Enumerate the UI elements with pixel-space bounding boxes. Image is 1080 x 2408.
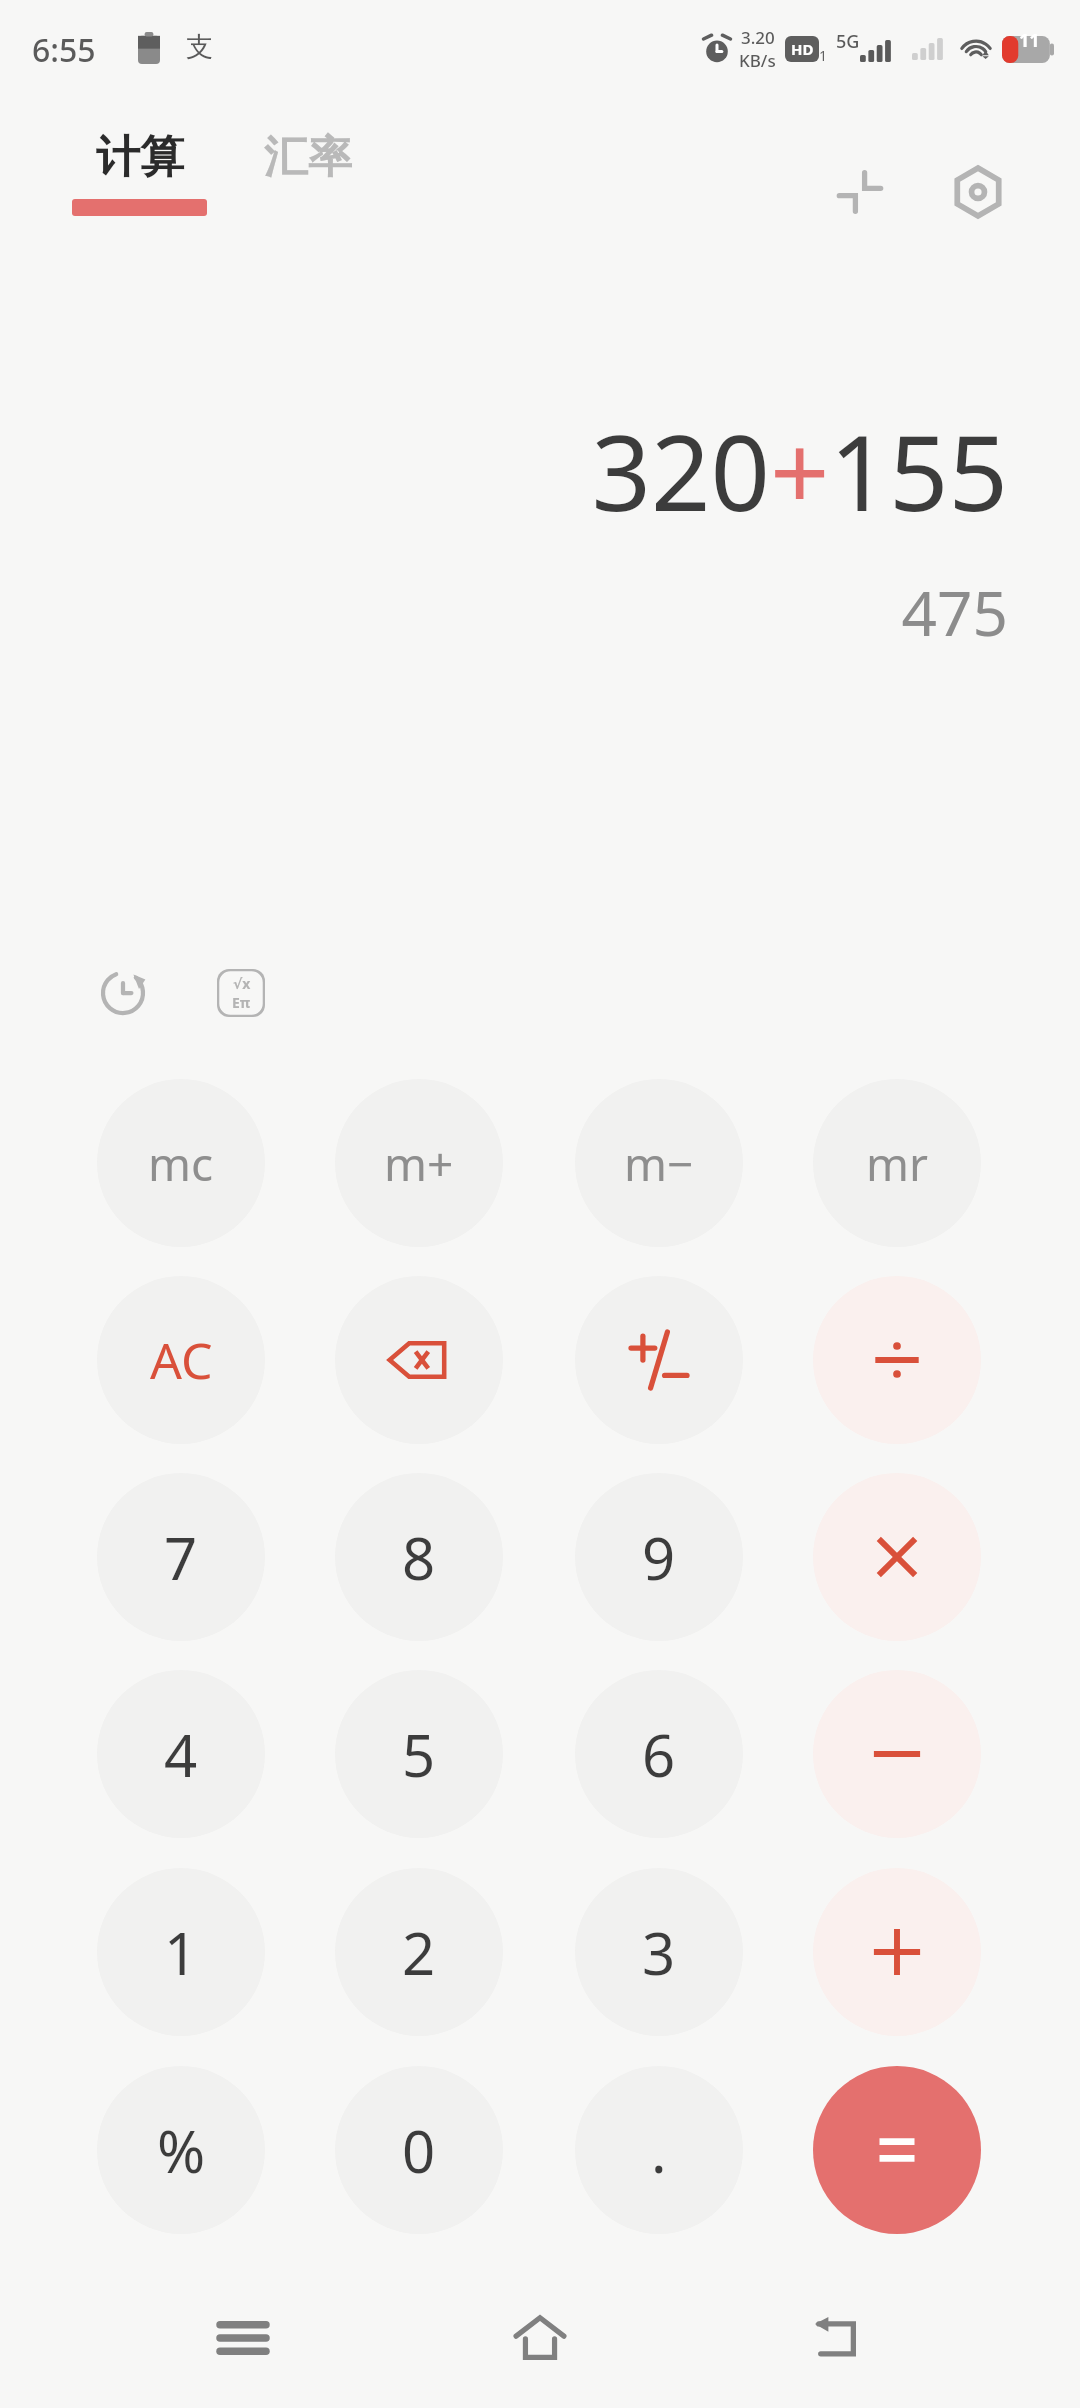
staticText: HD [791,39,814,59]
staticText: % [157,2111,206,2190]
button[interactable]: 3 [575,1868,743,2036]
button[interactable]: 汇率 [252,130,364,185]
button[interactable]: Minus [813,1670,981,1838]
button[interactable]: % [97,2066,265,2234]
staticText: 6 [642,1715,676,1794]
staticText: 汇率 [264,130,352,185]
button[interactable]: Recents [188,2283,298,2393]
staticText: m+ [384,1132,454,1195]
staticText: √x [233,974,251,993]
button[interactable]: Backspace [335,1276,503,1444]
button[interactable]: m− [575,1079,743,1247]
button[interactable]: Settings [930,144,1026,240]
button[interactable]: . [575,2066,743,2234]
button[interactable]: Home [485,2283,595,2393]
button[interactable]: AC [97,1276,265,1444]
button[interactable]: m+ [335,1079,503,1247]
button[interactable]: 4 [97,1670,265,1838]
staticText: 320+155 [591,400,1008,542]
staticText: 支 [186,30,213,64]
button[interactable]: History [78,948,168,1038]
button[interactable]: 8 [335,1473,503,1641]
staticText: 6:55 [32,28,96,72]
staticText: 5G [836,29,860,54]
staticText: KB/s [739,49,776,72]
button[interactable]: 7 [97,1473,265,1641]
button[interactable]: 0 [335,2066,503,2234]
button[interactable]: Divide [813,1276,981,1444]
staticText: m− [624,1132,694,1195]
button[interactable]: Back [783,2283,893,2393]
staticText: 475 [901,570,1008,654]
staticText: 5 [402,1715,436,1794]
button[interactable]: 1 [97,1868,265,2036]
staticText: 1 [164,1913,198,1992]
button[interactable]: mr [813,1079,981,1247]
staticText: 9 [642,1518,676,1597]
staticText: 计算 [96,130,184,185]
staticText: 11 [1019,28,1040,53]
staticText: 1 [819,46,828,65]
button[interactable]: Collapse [812,144,908,240]
button[interactable]: Scientific [196,948,286,1038]
button[interactable]: Equals [813,2066,981,2234]
button[interactable]: Multiply [813,1473,981,1641]
staticText: mr [866,1132,929,1195]
button[interactable]: Plus [813,1868,981,2036]
staticText: . [651,2111,667,2190]
staticText: 7 [164,1518,198,1597]
button[interactable]: Plus minus [575,1276,743,1444]
button[interactable]: 2 [335,1868,503,2036]
button[interactable]: 6 [575,1670,743,1838]
staticText: 8 [402,1518,436,1597]
button[interactable]: 计算 [60,130,219,216]
staticText: 4 [164,1715,198,1794]
staticText: AC [150,1326,213,1394]
staticText: 2 [402,1913,436,1992]
staticText: 3.20 [741,26,775,49]
staticText: 0 [402,2111,436,2190]
button[interactable]: mc [97,1079,265,1247]
staticText: 3 [642,1913,676,1992]
staticText: Eπ [232,993,251,1012]
staticText: mc [148,1132,214,1195]
button[interactable]: 5 [335,1670,503,1838]
button[interactable]: 9 [575,1473,743,1641]
